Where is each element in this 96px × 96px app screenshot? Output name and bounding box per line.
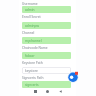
button[interactable]: adminpw: [22, 22, 71, 29]
staticText: Chaincode Name: [22, 46, 48, 50]
button[interactable]: Recent apps: [31, 87, 39, 95]
staticText: Keystore Path: [22, 61, 43, 65]
staticText: Enroll Secret: [22, 15, 41, 19]
button[interactable]: Home: [43, 87, 51, 95]
staticText: fabcar: [25, 54, 35, 58]
button[interactable]: Back: [56, 87, 64, 95]
staticText: Channel: [22, 31, 35, 35]
button[interactable]: mychannel: [22, 37, 71, 44]
button[interactable]: Assistant: [67, 71, 79, 83]
staticText: keystore: [25, 69, 38, 73]
staticText: admin: [25, 8, 35, 12]
staticText: mychannel: [25, 39, 42, 43]
staticText: adminpw: [25, 24, 39, 28]
staticText: signcerts: [25, 83, 39, 87]
staticText: Username: [22, 2, 38, 6]
button[interactable]: keystore: [22, 67, 71, 74]
button[interactable]: signcerts: [22, 81, 71, 88]
button[interactable]: admin: [22, 6, 71, 13]
staticText: Signcerts Path: [22, 76, 44, 80]
button[interactable]: fabcar: [22, 52, 71, 59]
